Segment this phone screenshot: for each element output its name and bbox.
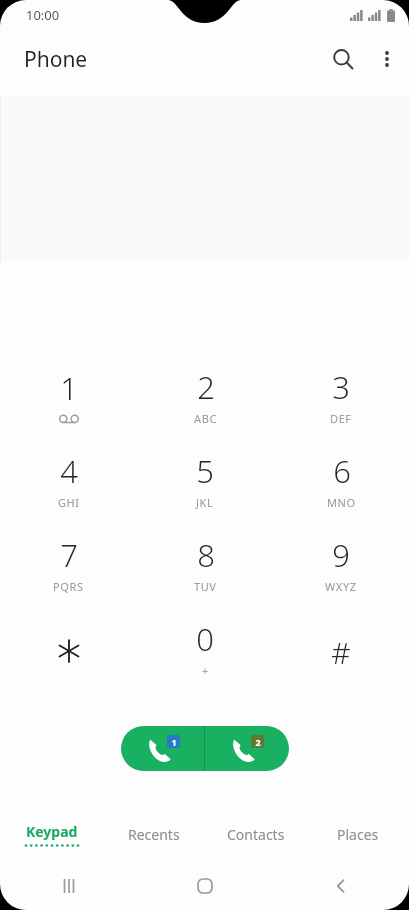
staticText: GHI xyxy=(58,495,80,510)
button[interactable]: More options xyxy=(365,37,409,81)
staticText: 0 xyxy=(196,618,214,660)
button[interactable]: # xyxy=(273,610,409,694)
staticText: Recents xyxy=(128,825,180,844)
staticText: Phone xyxy=(24,45,88,74)
staticText: Keypad xyxy=(26,822,78,841)
staticText: 1 xyxy=(60,367,78,409)
staticText: Places xyxy=(337,825,379,844)
staticText: JKL xyxy=(196,495,214,510)
staticText: 5 xyxy=(196,450,214,492)
staticText: 3 xyxy=(332,366,350,408)
button[interactable]: Search xyxy=(321,37,365,81)
staticText: ABC xyxy=(194,411,217,426)
button[interactable]: 0 xyxy=(137,610,273,694)
button[interactable]: 2 xyxy=(137,358,273,442)
staticText: 8 xyxy=(197,534,215,576)
button[interactable]: 7 xyxy=(0,526,137,610)
button[interactable]: Keypad xyxy=(0,812,103,856)
button[interactable]: 1 xyxy=(0,358,137,442)
button[interactable]: Call with SIM 1 xyxy=(121,726,204,771)
staticText: MNO xyxy=(327,495,356,510)
staticText: 10:00 xyxy=(26,6,60,24)
button[interactable]: Places xyxy=(307,812,409,856)
staticText: 7 xyxy=(60,534,78,576)
staticText: 4 xyxy=(60,450,78,492)
staticText: 2 xyxy=(255,736,261,748)
staticText: WXYZ xyxy=(325,579,357,594)
button[interactable]: Recent apps xyxy=(0,862,137,910)
staticText: 1 xyxy=(171,736,177,748)
staticText: 6 xyxy=(333,450,351,492)
staticText: TUV xyxy=(194,579,217,594)
button[interactable]: 6 xyxy=(273,442,409,526)
button[interactable]: 4 xyxy=(0,442,137,526)
button[interactable]: Call with SIM 2 xyxy=(205,726,289,771)
button[interactable]: 5 xyxy=(137,442,273,526)
button[interactable]: 8 xyxy=(137,526,273,610)
button[interactable]: 9 xyxy=(273,526,409,610)
button[interactable]: 3 xyxy=(273,358,409,442)
button[interactable]: Contacts xyxy=(205,812,307,856)
staticText: # xyxy=(331,632,351,673)
button[interactable]: Back xyxy=(273,862,409,910)
staticText: PQRS xyxy=(53,579,84,594)
staticText: DEF xyxy=(330,411,352,426)
button[interactable]: Home xyxy=(137,862,273,910)
staticText: 2 xyxy=(197,366,215,408)
staticText: 9 xyxy=(332,534,350,576)
staticText: + xyxy=(202,663,209,678)
staticText: Contacts xyxy=(227,825,285,844)
button[interactable] xyxy=(0,610,137,694)
button[interactable]: Recents xyxy=(103,812,205,856)
